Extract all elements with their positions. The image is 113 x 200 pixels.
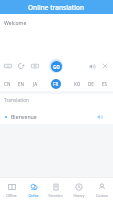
button[interactable]: Listen bbox=[86, 60, 98, 72]
staticText: FR bbox=[53, 81, 59, 87]
button[interactable]: History bbox=[67, 182, 90, 197]
button[interactable]: Bienvenue bbox=[0, 109, 113, 124]
staticText: DE bbox=[88, 81, 94, 87]
button[interactable]: Custom bbox=[90, 182, 113, 197]
staticText: Favorites bbox=[48, 193, 63, 197]
button[interactable]: EN bbox=[16, 79, 26, 89]
staticText: Custom bbox=[96, 193, 108, 197]
staticText: Offline bbox=[6, 193, 17, 197]
staticText: Bienvenue bbox=[11, 113, 37, 120]
button[interactable]: DE bbox=[86, 79, 96, 89]
staticText: Online bbox=[28, 193, 39, 197]
button[interactable]: Favorites bbox=[44, 182, 67, 197]
staticText: JA bbox=[33, 81, 38, 87]
button[interactable]: Clear text bbox=[99, 60, 111, 72]
staticText: Online translation bbox=[28, 3, 85, 12]
button[interactable]: ES bbox=[100, 79, 110, 89]
staticText: KO bbox=[74, 81, 81, 87]
button[interactable]: GO bbox=[49, 59, 63, 73]
staticText: EN bbox=[18, 81, 25, 87]
staticText: History bbox=[73, 193, 85, 197]
staticText: CN bbox=[4, 81, 11, 87]
staticText: Welcome bbox=[4, 19, 27, 26]
button[interactable]: Online bbox=[22, 182, 44, 197]
button[interactable]: JA bbox=[30, 79, 40, 89]
button[interactable]: CN bbox=[2, 79, 12, 89]
button[interactable]: KO bbox=[72, 79, 82, 89]
staticText: ES bbox=[102, 81, 108, 87]
button[interactable]: Keyboard bbox=[2, 60, 14, 72]
staticText: Translation bbox=[4, 97, 30, 104]
button[interactable]: FR bbox=[51, 79, 61, 89]
button[interactable]: Camera bbox=[29, 60, 41, 72]
button[interactable]: Offline bbox=[0, 182, 22, 197]
button[interactable]: Play translation bbox=[95, 112, 105, 122]
button[interactable]: Swap languages bbox=[15, 60, 27, 72]
staticText: GO bbox=[53, 64, 60, 70]
